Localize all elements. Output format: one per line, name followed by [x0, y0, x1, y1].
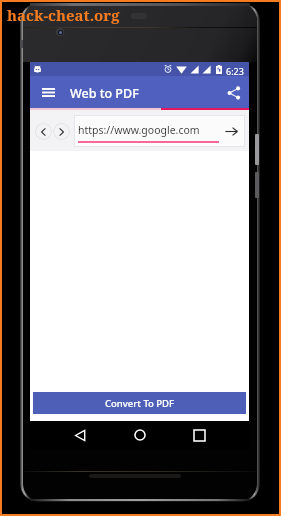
button[interactable]: Menu — [33, 77, 63, 107]
staticText: 6:23 — [226, 65, 244, 77]
button[interactable]: Home — [129, 424, 151, 446]
staticText: hack-cheat.org — [7, 5, 120, 25]
staticText: https://www.google.com — [78, 123, 200, 137]
button[interactable]: Forward — [53, 123, 70, 140]
button[interactable]: Share — [219, 78, 249, 108]
button[interactable]: Back — [69, 424, 91, 446]
button[interactable]: Convert To PDF — [33, 392, 246, 414]
button[interactable]: Back — [35, 123, 52, 140]
button[interactable]: Go — [223, 123, 239, 139]
staticText: Web to PDF — [70, 85, 139, 102]
button[interactable]: Recents — [188, 424, 210, 446]
staticText: Convert To PDF — [105, 397, 175, 410]
